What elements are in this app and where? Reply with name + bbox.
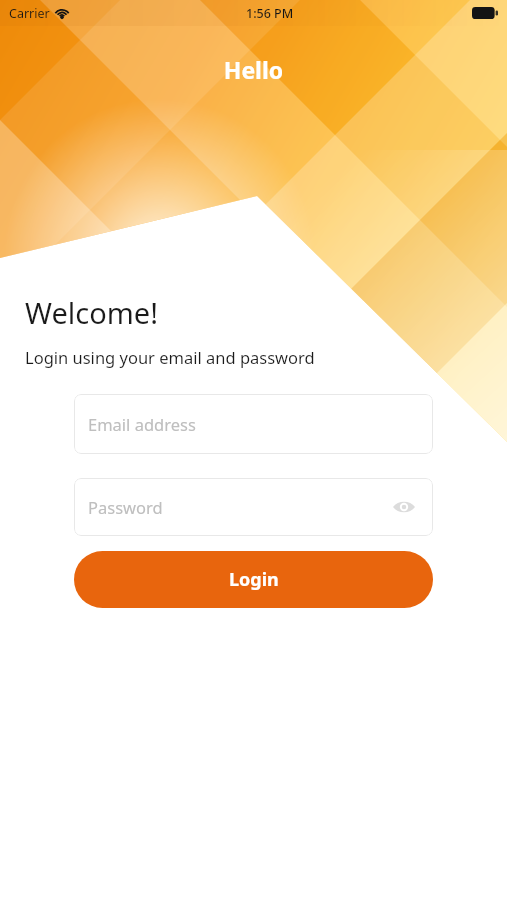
button[interactable]: Login [74,551,433,608]
staticText: 1:56 PM [246,5,294,22]
staticText: Welcome! [25,293,158,332]
button[interactable]: Email address [74,394,433,454]
staticText: Login using your email and password [25,346,315,368]
staticText: Carrier [9,5,50,22]
button[interactable]: Show password [390,493,418,521]
staticText: Password [88,496,163,518]
staticText: Hello [0,54,507,85]
staticText: Email address [88,413,196,435]
staticText: Login [229,567,279,592]
button[interactable]: Password [74,478,433,536]
